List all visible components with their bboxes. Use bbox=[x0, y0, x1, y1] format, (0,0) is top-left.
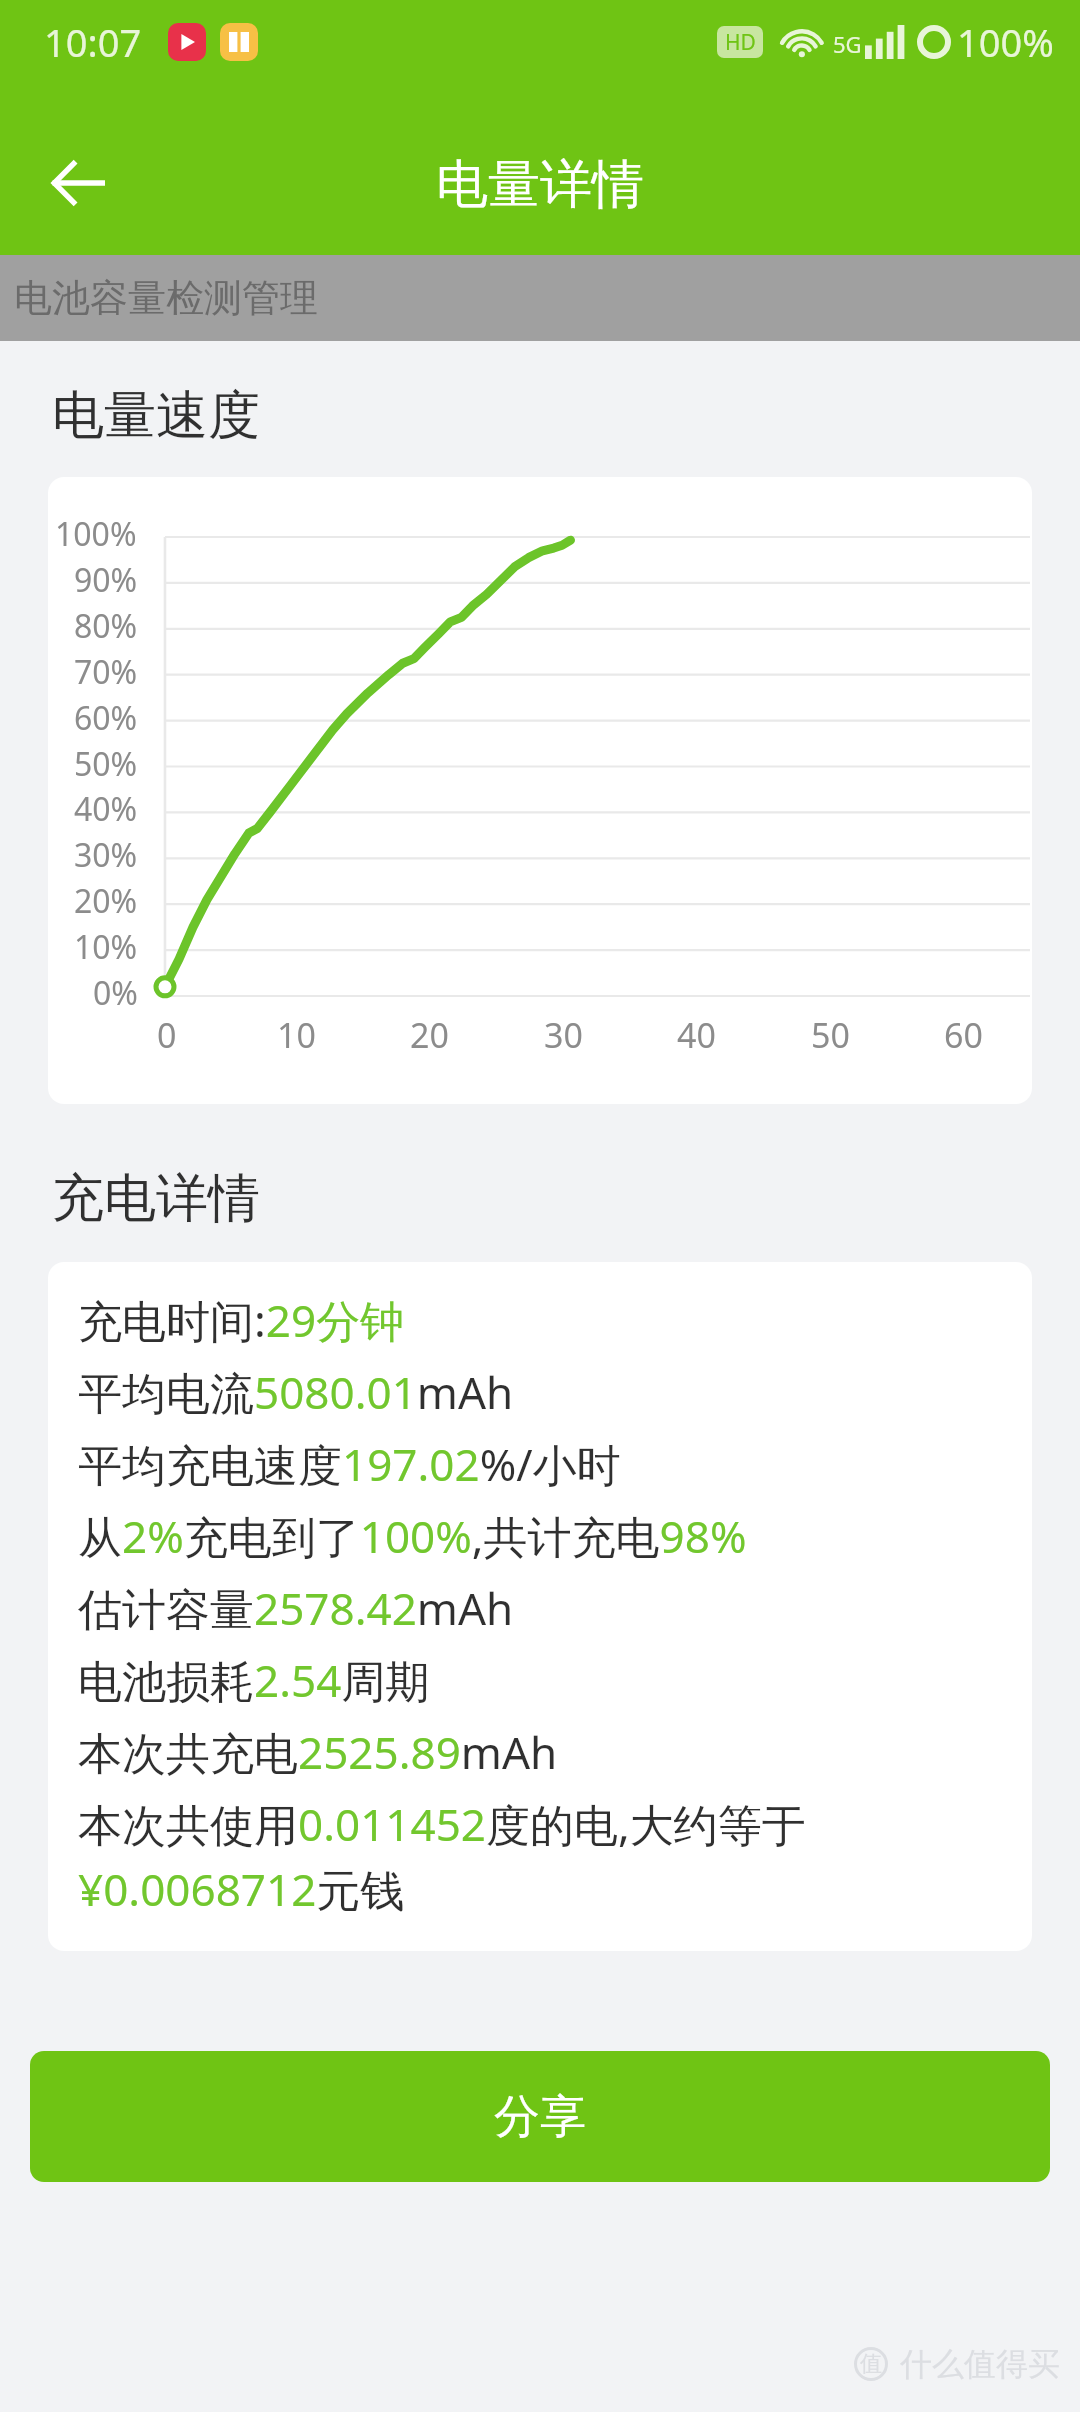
staticText: HD bbox=[725, 28, 756, 57]
staticText: 60 bbox=[944, 1012, 983, 1058]
staticText: 30 bbox=[544, 1012, 583, 1058]
staticText: 50% bbox=[74, 742, 138, 786]
staticText: 40% bbox=[74, 787, 138, 831]
staticText: 80% bbox=[74, 604, 138, 648]
staticText: 5G bbox=[833, 29, 862, 59]
staticText: 本次共充电2525.89mAh bbox=[78, 1722, 558, 1782]
staticText: 20% bbox=[74, 879, 138, 923]
button[interactable]: Back bbox=[30, 135, 126, 231]
staticText: 60% bbox=[74, 696, 138, 740]
staticText: 值 bbox=[860, 2350, 882, 2378]
staticText: 100% bbox=[957, 16, 1054, 68]
staticText: 估计容量2578.42mAh bbox=[78, 1578, 514, 1638]
staticText: 什么值得买 bbox=[900, 2344, 1060, 2384]
staticText: 充电时间:29分钟 bbox=[78, 1290, 405, 1350]
staticText: 50 bbox=[811, 1012, 850, 1058]
staticText: 20 bbox=[410, 1012, 449, 1058]
button[interactable]: 电池容量检测管理 bbox=[0, 255, 1080, 341]
staticText: 从2%充电到了100%,共计充电98% bbox=[78, 1506, 747, 1566]
staticText: 10% bbox=[74, 925, 138, 969]
staticText: 充电详情 bbox=[52, 1166, 260, 1232]
staticText: 70% bbox=[74, 650, 138, 694]
button[interactable]: 分享 bbox=[30, 2051, 1050, 2182]
staticText: 100% bbox=[55, 512, 137, 556]
staticText: 0 bbox=[157, 1012, 177, 1058]
staticText: 10:07 bbox=[44, 16, 142, 68]
staticText: 90% bbox=[74, 558, 138, 602]
staticText: 40 bbox=[677, 1012, 716, 1058]
staticText: 电池损耗2.54周期 bbox=[78, 1650, 430, 1710]
staticText: 10 bbox=[277, 1012, 316, 1058]
staticText: 分享 bbox=[494, 2088, 586, 2146]
staticText: 电量详情 bbox=[436, 152, 644, 218]
staticText: 电池容量检测管理 bbox=[14, 274, 318, 322]
staticText: 平均充电速度197.02%/小时 bbox=[78, 1434, 621, 1494]
staticText: 平均电流5080.01mAh bbox=[78, 1362, 514, 1422]
staticText: 本次共使用0.011452度的电,大约等于¥0.0068712元钱 bbox=[78, 1794, 1016, 1919]
staticText: 0% bbox=[93, 971, 138, 1015]
staticText: 电量速度 bbox=[52, 383, 260, 449]
staticText: 30% bbox=[74, 833, 138, 877]
